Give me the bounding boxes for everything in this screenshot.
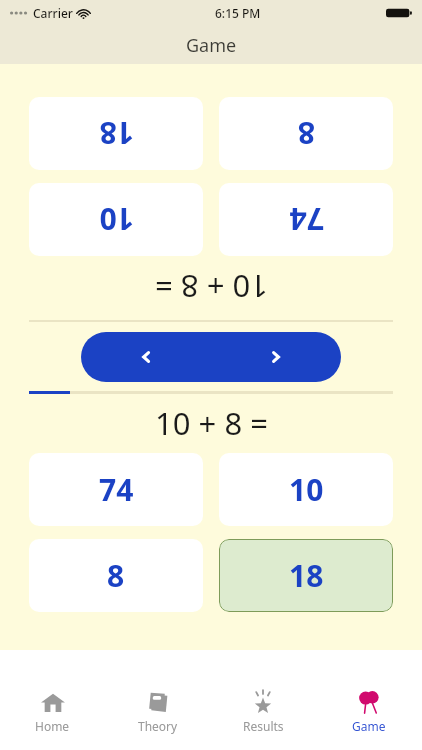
button[interactable]: Results — [210, 650, 316, 750]
staticText: Results — [243, 718, 284, 734]
staticText: 10 + 8 = — [155, 402, 268, 444]
button[interactable]: 74 — [219, 183, 393, 256]
button[interactable]: Turn controls — [81, 332, 341, 382]
button[interactable]: 10 — [29, 183, 203, 256]
staticText: 8 — [297, 113, 315, 154]
button[interactable]: Theory — [105, 650, 210, 750]
button[interactable]: Home — [0, 650, 105, 750]
button[interactable]: 10 — [219, 453, 393, 526]
staticText: 8 — [107, 555, 125, 596]
button[interactable]: 18 — [29, 97, 203, 170]
staticText: 6:15 PM — [215, 5, 261, 21]
button[interactable]: 8 — [219, 97, 393, 170]
button[interactable]: 18 — [219, 539, 393, 612]
staticText: Game — [186, 33, 237, 58]
staticText: 10 + 8 = — [155, 266, 268, 308]
staticText: 74 — [99, 469, 134, 510]
staticText: 18 — [289, 555, 324, 596]
button[interactable]: Game — [316, 650, 422, 750]
staticText: 10 — [99, 199, 134, 240]
button[interactable]: 8 — [29, 539, 203, 612]
staticText: 18 — [99, 113, 134, 154]
button[interactable]: 74 — [29, 453, 203, 526]
staticText: Theory — [138, 718, 178, 734]
staticText: Carrier — [33, 5, 73, 21]
staticText: 74 — [289, 199, 324, 240]
staticText: Game — [352, 718, 386, 734]
staticText: 10 — [289, 469, 324, 510]
staticText: Home — [35, 718, 70, 734]
